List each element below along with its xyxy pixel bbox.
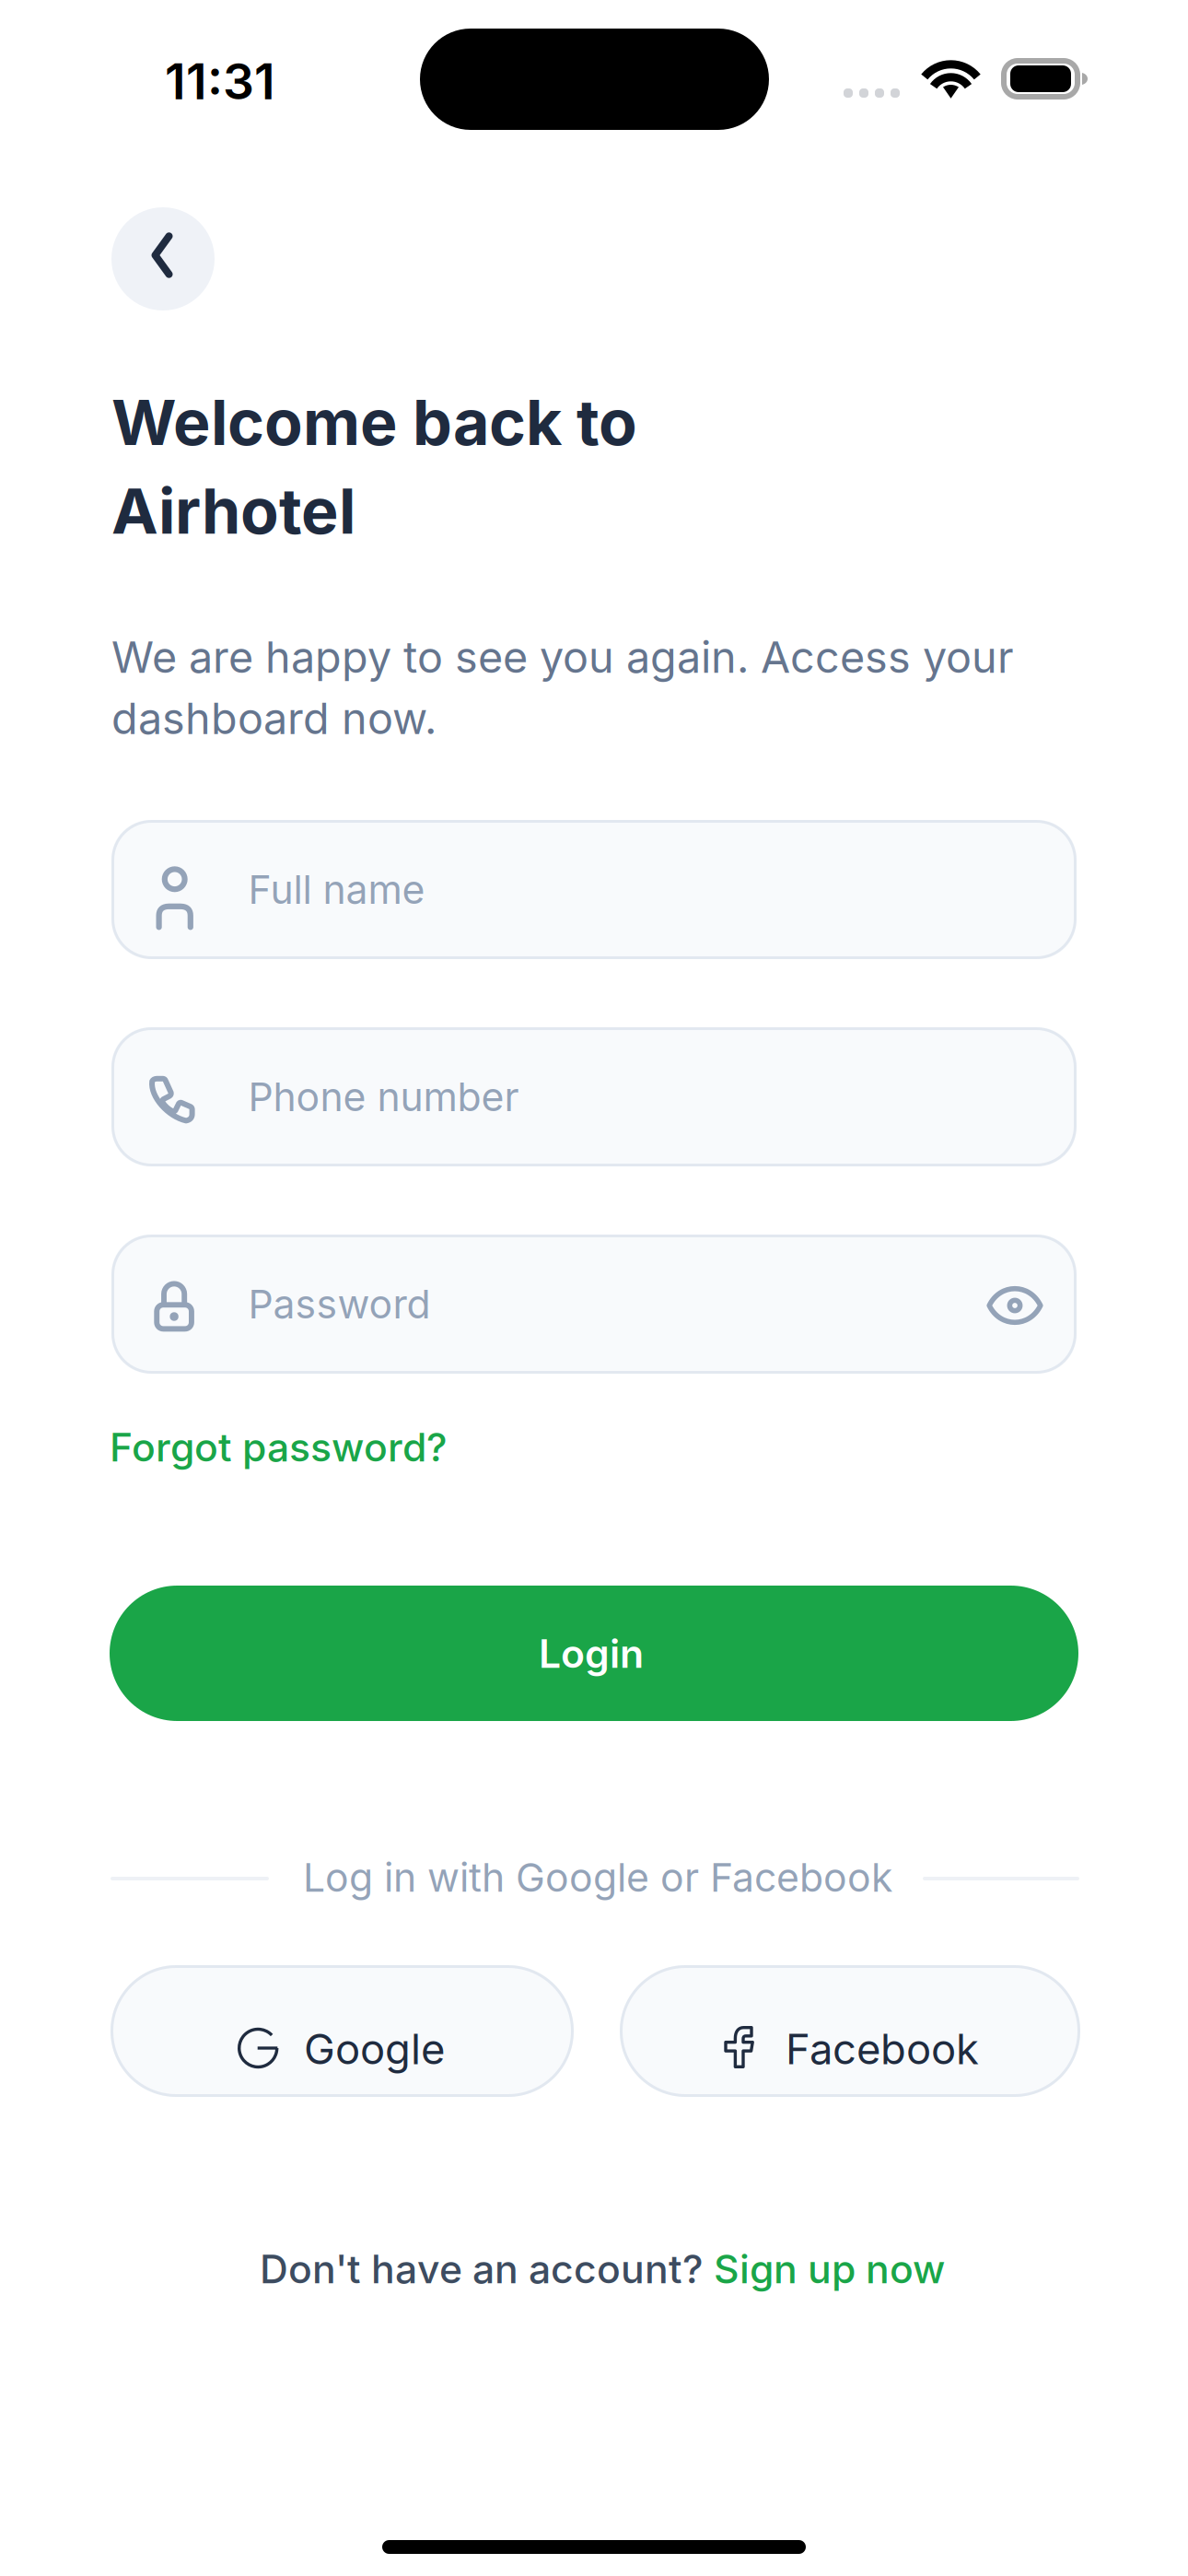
button[interactable]: Login: [110, 1586, 1078, 1721]
staticText: We are happy to see you again. Access yo…: [111, 631, 1014, 683]
staticText: Full name: [248, 866, 425, 913]
staticText: Password: [248, 1280, 431, 1328]
staticText: Login: [539, 1630, 644, 1677]
staticText: Airhotel: [111, 473, 355, 549]
staticText: Sign up now: [714, 2245, 945, 2293]
staticText: Phone number: [248, 1073, 519, 1121]
button[interactable]: Google: [111, 1965, 574, 2097]
staticText: Log in with Google or Facebook: [303, 1854, 892, 1901]
button[interactable]: Don't have an account?: [260, 2245, 945, 2293]
button[interactable]: Back: [111, 207, 215, 310]
staticText: Welcome back to: [111, 384, 637, 460]
staticText: Facebook: [786, 2024, 979, 2074]
button[interactable]: Show password: [964, 1255, 1066, 1356]
button[interactable]: Facebook: [620, 1965, 1080, 2097]
staticText: Don't have an account?: [260, 2245, 714, 2293]
staticText: Forgot password?: [110, 1423, 448, 1471]
button[interactable]: Forgot password?: [110, 1423, 448, 1471]
staticText: 11:31: [165, 52, 275, 111]
staticText: Google: [304, 2024, 445, 2074]
staticText: dashboard now.: [111, 692, 437, 744]
